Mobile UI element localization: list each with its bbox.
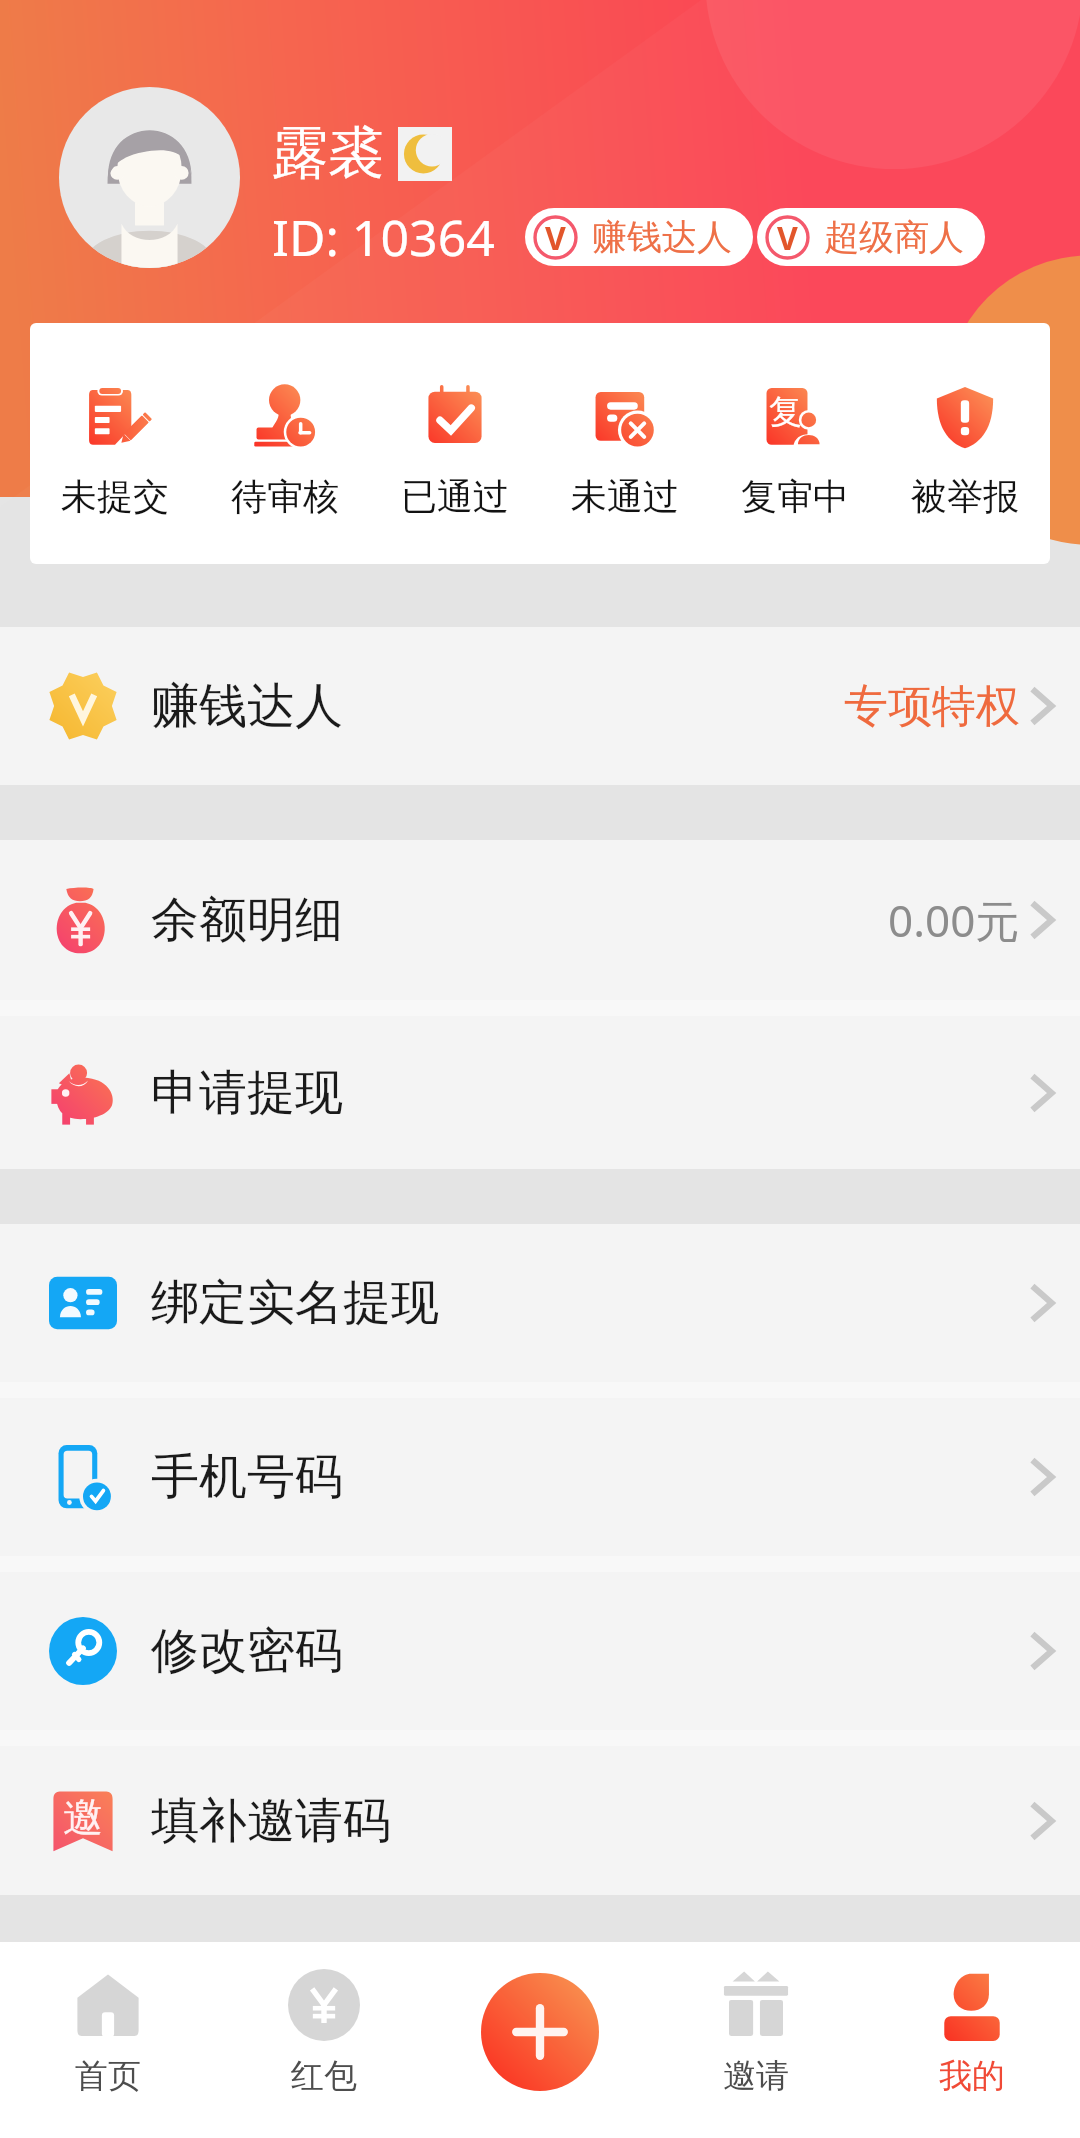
staticText: 我的 [939,2055,1005,2097]
staticText: V [545,216,566,260]
staticText: 已通过 [401,474,509,519]
button[interactable]: 绑定实名提现 [0,1224,1080,1382]
staticText: 余额明细 [151,890,343,950]
button[interactable]: V [757,208,985,266]
staticText: 填补邀请码 [151,1791,391,1851]
button[interactable]: 邀请 [648,1942,864,2138]
staticText: 未提交 [61,474,169,519]
button[interactable]: 余额明细 [0,840,1080,1000]
button[interactable]: 已通过 [370,323,540,564]
staticText: V [777,216,798,260]
staticText: 邀请 [723,2055,789,2097]
staticText: 未通过 [571,474,679,519]
staticText: 首页 [75,2055,141,2097]
button[interactable]: 我的 [864,1942,1080,2138]
button[interactable]: 复 [710,323,880,564]
button[interactable]: 未提交 [30,323,200,564]
staticText: ID: 10364 [272,203,495,271]
button[interactable]: 被举报 [880,323,1050,564]
button[interactable]: 邀 [0,1746,1080,1895]
button[interactable]: 首页 [0,1942,216,2138]
staticText: 红包 [291,2055,357,2097]
staticText: 赚钱达人 [592,215,732,259]
button[interactable]: 未通过 [540,323,710,564]
staticText: 申请提现 [151,1063,343,1123]
staticText: 绑定实名提现 [151,1273,439,1333]
staticText: 露裘 [272,118,384,189]
staticText: 0.00元 [888,890,1020,950]
staticText: 复审中 [741,474,849,519]
button[interactable]: V [525,208,753,266]
staticText: 复 [769,391,802,433]
button[interactable]: 赚钱达人 [0,627,1080,785]
staticText: 专项特权 [844,679,1020,734]
staticText: 邀 [63,1792,103,1842]
button[interactable]: 手机号码 [0,1398,1080,1556]
staticText: 手机号码 [151,1447,343,1507]
staticText: 待审核 [231,474,339,519]
staticText: 赚钱达人 [151,676,343,736]
button[interactable]: 红包 [216,1942,432,2138]
staticText: 被举报 [911,474,1019,519]
button[interactable]: Publish [481,1973,599,2091]
staticText: 超级商人 [824,215,964,259]
button[interactable]: Profile photo [59,87,240,268]
button[interactable]: 待审核 [200,323,370,564]
button[interactable]: 修改密码 [0,1572,1080,1730]
button[interactable]: 申请提现 [0,1016,1080,1169]
staticText: 修改密码 [151,1621,343,1681]
